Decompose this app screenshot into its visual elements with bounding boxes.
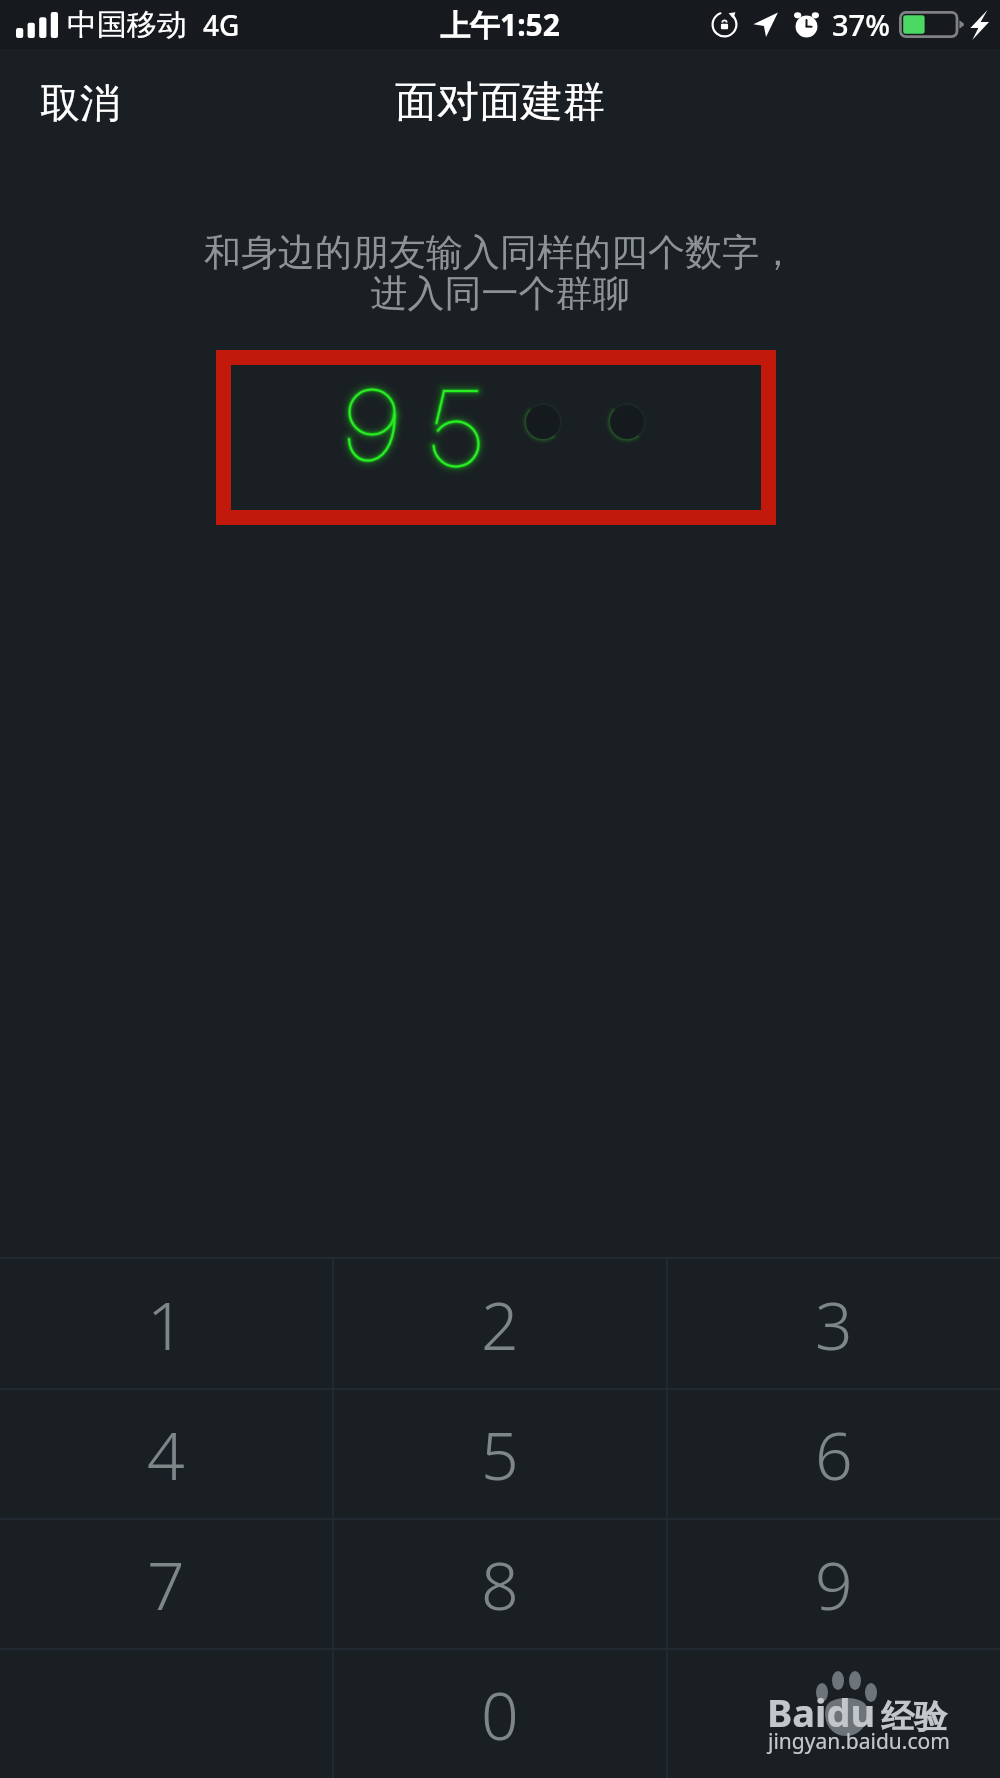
staticText: 4G [203,6,240,44]
staticText: 面对面建群 [395,76,605,129]
staticText: 2 [481,1279,519,1369]
staticText: jingyan.baidu.com [768,1727,950,1756]
button[interactable]: 8 [334,1520,666,1648]
button[interactable]: 1 [0,1259,332,1388]
button[interactable]: 9 [668,1520,1000,1648]
staticText: 4 [147,1409,185,1499]
button[interactable]: 2 [334,1259,666,1388]
other: Battery 37 percent [899,11,965,38]
staticText: 3 [815,1279,853,1369]
other: Cellular signal strength [16,12,58,38]
staticText: 37% [832,5,890,44]
button[interactable]: 6 [668,1390,1000,1518]
button[interactable]: 5 [334,1390,666,1518]
staticText: 和身边的朋友输入同样的四个数字， 进入同一个群聊 [0,229,1000,317]
staticText: 经验 [881,1696,947,1738]
other: Rotation lock [711,11,738,38]
other: Location services active [752,11,779,38]
staticText: 0 [481,1669,519,1759]
staticText: 5 [481,1409,519,1499]
button[interactable]: 取消 [0,64,144,138]
staticText: 6 [815,1409,853,1499]
staticText: Baidu [767,1686,876,1738]
button[interactable]: 4 [0,1390,332,1518]
staticText: 1 [147,1279,185,1369]
staticText: 9 [815,1539,853,1629]
other: Charging [970,10,989,40]
other: Entered code 9 5, two digits remaining [0,349,1000,527]
staticText: 中国移动 [67,6,187,44]
other: Alarm set [793,11,820,38]
button[interactable]: 7 [0,1520,332,1648]
staticText: 7 [147,1539,185,1629]
staticText: 上午1:52 [440,4,560,45]
button[interactable] [668,1650,1000,1778]
staticText: 取消 [40,78,120,128]
staticText: 8 [481,1539,519,1629]
button[interactable]: 0 [334,1650,666,1778]
button[interactable]: 3 [668,1259,1000,1388]
